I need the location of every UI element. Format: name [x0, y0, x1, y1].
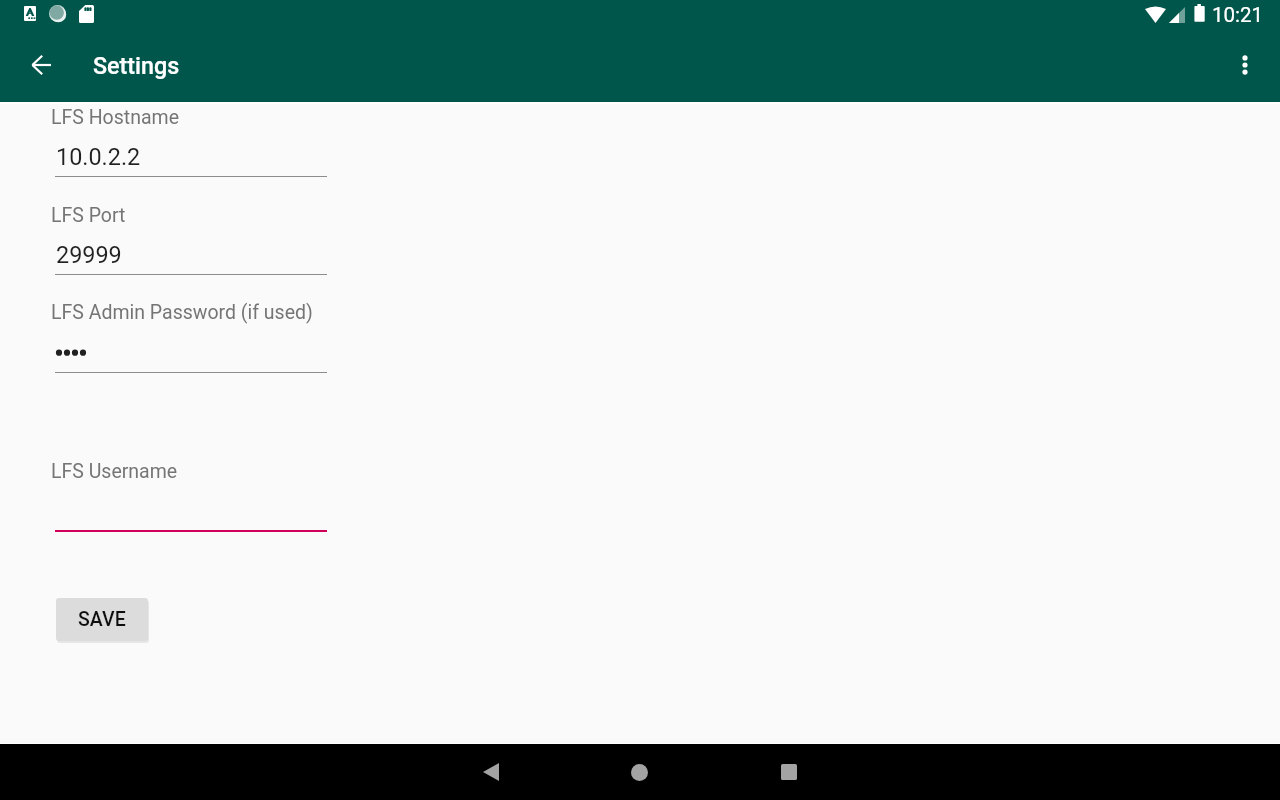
staticText: LFS Port: [51, 204, 126, 227]
button[interactable]: Recent apps: [765, 748, 813, 796]
button[interactable]: More options: [1221, 41, 1269, 89]
staticText: Settings: [93, 52, 180, 79]
staticText: LFS Username: [51, 460, 178, 483]
button[interactable]: Back: [467, 748, 515, 796]
button[interactable]: SAVE: [56, 598, 148, 641]
staticText: 10.0.2.2: [56, 143, 141, 170]
staticText: LFS Hostname: [51, 106, 179, 129]
staticText: SAVE: [78, 608, 126, 631]
button[interactable]: Home: [615, 748, 663, 796]
staticText: 10:21: [1212, 3, 1264, 27]
button[interactable]: Navigate up: [19, 41, 67, 89]
staticText: 29999: [56, 241, 122, 268]
staticText: LFS Admin Password (if used): [51, 301, 313, 324]
